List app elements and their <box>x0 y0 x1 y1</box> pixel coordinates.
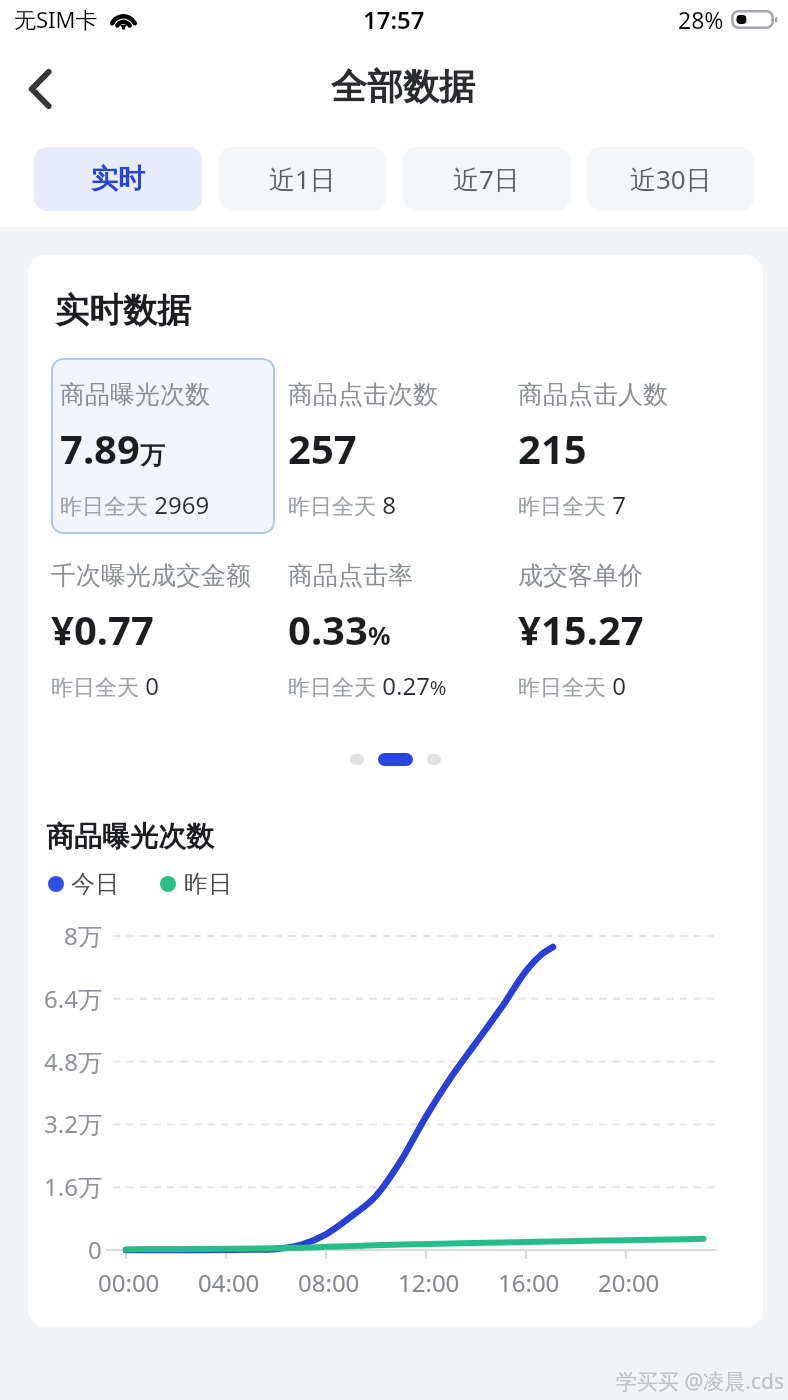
staticText: 215 <box>518 421 587 475</box>
staticText: 7.89万 <box>60 421 165 475</box>
staticText: 今日 <box>71 869 119 899</box>
staticText: 千次曝光成交金额 <box>51 560 251 591</box>
staticText: ¥15.27 <box>518 602 644 656</box>
staticText: 16:00 <box>498 1266 560 1299</box>
staticText: 商品点击率 <box>288 560 413 591</box>
staticText: 昨日全天 0.27% <box>288 669 447 702</box>
staticText: 昨日全天 7 <box>518 488 626 521</box>
staticText: 近30日 <box>630 161 712 197</box>
staticText: 257 <box>288 421 357 475</box>
staticText: 1.6万 <box>44 1170 102 1203</box>
staticText: 昨日全天 0 <box>518 669 626 702</box>
staticText: 昨日全天 2969 <box>60 488 210 521</box>
button[interactable]: 近1日 <box>219 147 386 211</box>
staticText: ¥0.77 <box>51 602 154 656</box>
staticText: 20:00 <box>598 1266 660 1299</box>
staticText: 无SIM卡 <box>14 4 98 34</box>
staticText: 4.8万 <box>44 1045 102 1078</box>
staticText: 实时数据 <box>55 289 191 332</box>
staticText: 商品点击人数 <box>518 379 668 410</box>
staticText: 近7日 <box>453 161 520 197</box>
staticText: 12:00 <box>398 1266 460 1299</box>
staticText: 8万 <box>64 919 102 952</box>
button[interactable]: 近30日 <box>587 147 754 211</box>
staticText: 08:00 <box>298 1266 360 1299</box>
staticText: 3.2万 <box>44 1107 102 1140</box>
staticText: 昨日全天 0 <box>51 669 159 702</box>
staticText: 0 <box>88 1233 102 1266</box>
staticText: 04:00 <box>198 1266 260 1299</box>
staticText: 昨日全天 8 <box>288 488 396 521</box>
staticText: 近1日 <box>269 161 336 197</box>
button[interactable]: 近7日 <box>403 147 570 211</box>
button[interactable]: 成交客单价 <box>518 539 648 715</box>
button[interactable]: 实时 <box>34 147 202 211</box>
staticText: 28% <box>678 4 724 35</box>
staticText: 6.4万 <box>44 982 102 1015</box>
staticText: 实时 <box>91 162 145 196</box>
staticText: 成交客单价 <box>518 560 643 591</box>
button[interactable]: Back <box>12 61 68 117</box>
staticText: 昨日 <box>184 869 232 899</box>
button[interactable]: 千次曝光成交金额 <box>51 539 255 715</box>
staticText: 商品曝光次数 <box>60 379 210 410</box>
button[interactable]: 商品点击次数 <box>288 358 442 534</box>
staticText: 00:00 <box>98 1266 160 1299</box>
button[interactable]: 商品曝光次数 <box>51 358 275 534</box>
staticText: 商品曝光次数 <box>46 819 214 854</box>
staticText: 全部数据 <box>331 64 475 109</box>
button[interactable]: 商品点击率 <box>288 539 451 715</box>
staticText: 商品点击次数 <box>288 379 438 410</box>
staticText: 0.33% <box>288 602 391 656</box>
staticText: 17:57 <box>363 3 425 36</box>
staticText: 学买买 @凌晨.cds <box>616 1367 785 1396</box>
button[interactable]: 商品点击人数 <box>518 358 672 534</box>
